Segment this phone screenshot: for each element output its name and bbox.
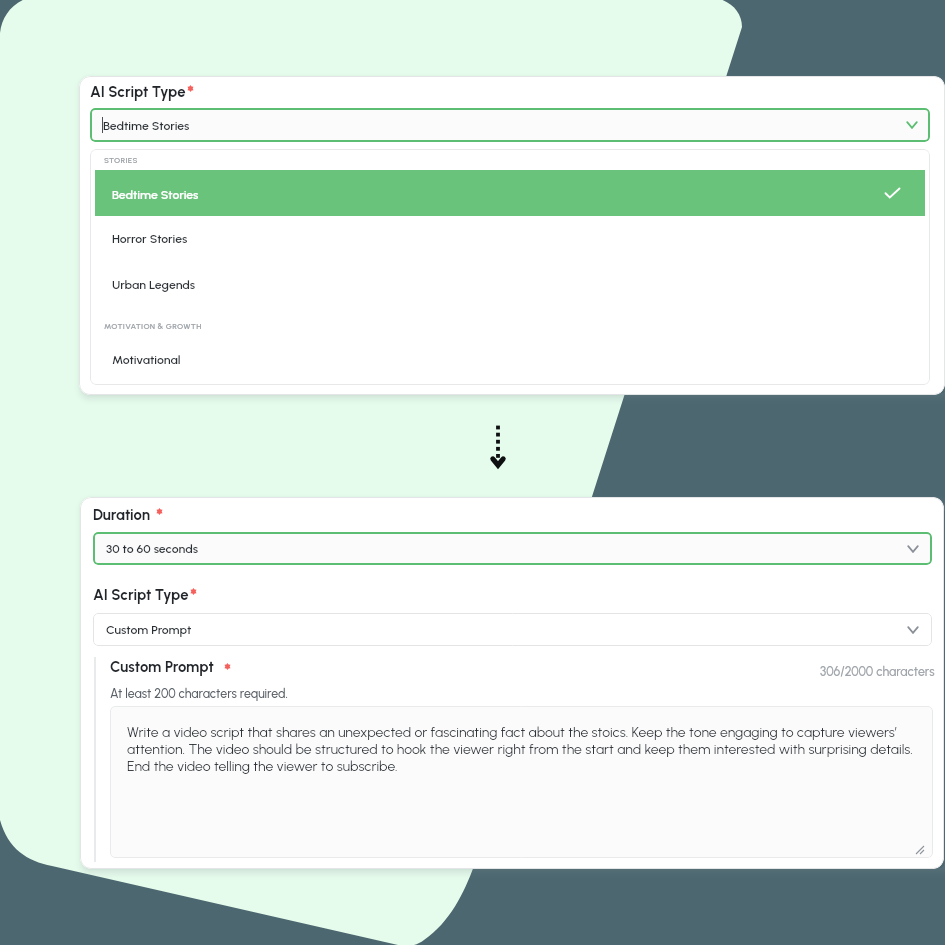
staticText: Bedtime Stories	[103, 118, 190, 133]
staticText: 30 to 60 seconds	[106, 541, 199, 556]
staticText: Urban Legends	[112, 277, 196, 292]
button[interactable]: Motivational	[95, 336, 925, 380]
staticText: Motivational	[112, 352, 181, 367]
staticText: Write a video script that shares an unex…	[127, 724, 917, 775]
staticText: Custom Prompt	[106, 622, 192, 637]
button[interactable]: Bedtime Stories	[90, 108, 930, 142]
button[interactable]: 30 to 60 seconds	[93, 532, 932, 565]
staticText: STORIES	[104, 155, 138, 165]
button[interactable]: Custom Prompt	[93, 613, 932, 646]
staticText: Bedtime Stories	[112, 187, 199, 202]
staticText: MOTIVATION & GROWTH	[104, 321, 202, 331]
button[interactable]: Horror Stories	[95, 215, 925, 259]
staticText: AI Script Type	[90, 83, 186, 101]
button[interactable]: Bedtime Stories	[95, 170, 925, 216]
staticText: 306/2000 characters	[820, 664, 935, 679]
staticText: AI Script Type	[93, 586, 189, 604]
button[interactable]: Write a video script that shares an unex…	[110, 706, 933, 858]
staticText: Duration	[93, 506, 151, 524]
other: Expand	[906, 121, 918, 129]
other: Expand	[907, 626, 919, 634]
button[interactable]: Urban Legends	[95, 261, 925, 305]
other: Expand	[907, 545, 919, 553]
other: Flows to	[482, 420, 514, 472]
staticText: At least 200 characters required.	[110, 686, 288, 701]
staticText: Custom Prompt	[110, 658, 214, 676]
other: Selected	[884, 187, 901, 199]
staticText: Horror Stories	[112, 231, 188, 246]
